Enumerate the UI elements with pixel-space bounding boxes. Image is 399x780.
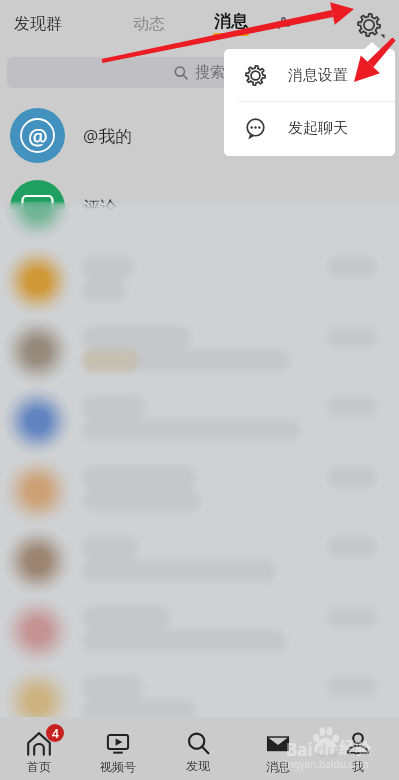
staticText: 评论: [83, 197, 117, 218]
staticText: 视频号: [100, 759, 136, 774]
button[interactable]: 发现: [158, 721, 238, 780]
button[interactable]: 消息: [238, 721, 318, 780]
staticText: @: [28, 121, 48, 151]
staticText: 发现: [186, 758, 210, 773]
button[interactable]: 消息设置: [224, 49, 395, 101]
staticText: @我的: [83, 124, 133, 147]
button[interactable]: 4: [0, 721, 78, 780]
staticText: 4: [52, 725, 59, 741]
staticText: du: [316, 739, 338, 762]
staticText: 发现群: [14, 14, 62, 34]
button[interactable]: 消息: [207, 0, 255, 47]
staticText: Bai: [286, 738, 313, 761]
button[interactable]: 发现群: [8, 0, 68, 47]
staticText: 经验: [339, 739, 371, 759]
staticText: 消息: [266, 759, 290, 774]
staticText: 动态: [133, 14, 165, 34]
staticText: 消息: [214, 11, 248, 32]
button[interactable]: Mute: [271, 11, 295, 35]
button[interactable]: Settings: [353, 9, 385, 41]
staticText: jingyan.baidu.com: [282, 757, 369, 771]
staticText: 消息设置: [288, 66, 348, 85]
staticText: 搜索: [195, 63, 225, 82]
button[interactable]: 动态: [127, 0, 171, 47]
button[interactable]: 视频号: [78, 721, 158, 780]
staticText: 我: [352, 759, 364, 774]
staticText: 发起聊天: [288, 119, 348, 138]
button[interactable]: 搜索: [7, 57, 392, 88]
button[interactable]: @: [0, 99, 399, 171]
button[interactable]: 评论: [0, 171, 399, 243]
staticText: 首页: [27, 759, 51, 774]
button[interactable]: 发起聊天: [224, 102, 395, 155]
button[interactable]: 我: [318, 721, 398, 780]
